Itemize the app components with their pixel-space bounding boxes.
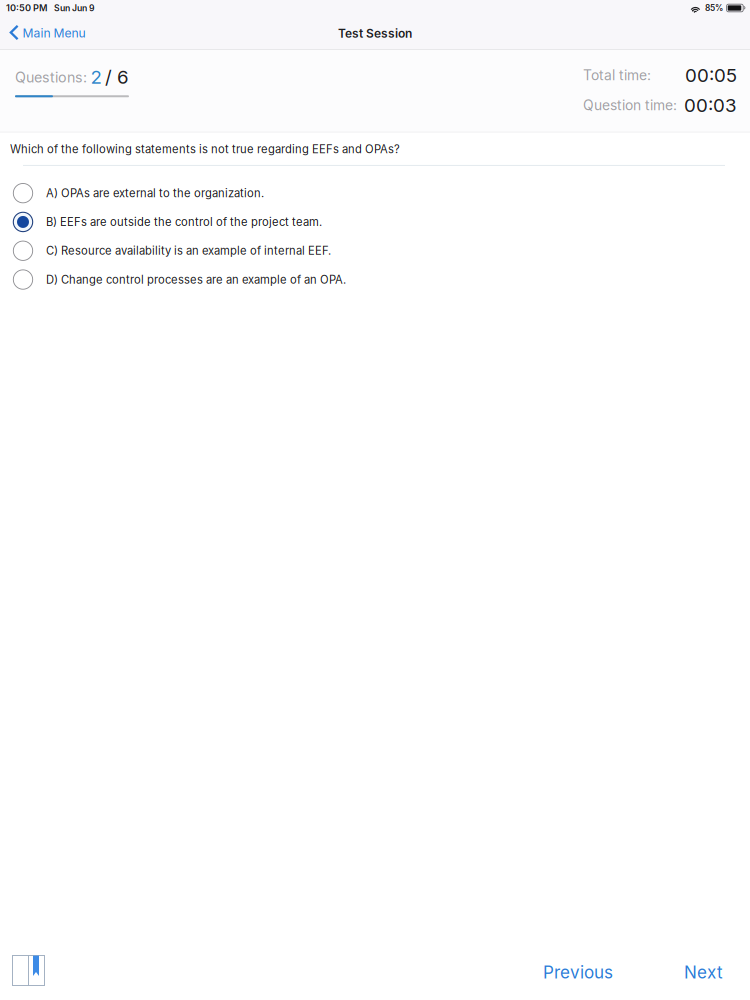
staticText: Main Menu	[22, 26, 85, 41]
button[interactable]: Previous	[531, 955, 625, 999]
staticText: A) OPAs are external to the organization…	[46, 186, 264, 200]
staticText: Test Session	[338, 26, 412, 41]
button[interactable]: C) Resource availability is an example o…	[0, 236, 750, 265]
staticText: 00:03	[684, 94, 737, 116]
staticText: Total time:	[583, 67, 651, 84]
button[interactable]: Main Menu	[0, 18, 95, 47]
button[interactable]: Next	[672, 955, 750, 999]
staticText: 85%	[705, 3, 723, 13]
button[interactable]: Bookmarks	[0, 955, 57, 1000]
button[interactable]: A) OPAs are external to the organization…	[0, 179, 750, 208]
staticText: Sun Jun 9	[54, 3, 95, 13]
staticText: Previous	[543, 962, 613, 983]
staticText: D) Change control processes are an examp…	[46, 273, 346, 286]
button[interactable]: D) Change control processes are an examp…	[0, 265, 750, 294]
button[interactable]: B) EEFs are outside the control of the p…	[0, 208, 750, 236]
staticText: Questions:	[15, 69, 87, 86]
staticText: / 6	[105, 66, 129, 88]
staticText: 10:50 PM	[6, 2, 47, 13]
staticText: B) EEFs are outside the control of the p…	[46, 215, 322, 229]
staticText: Which of the following statements is not…	[10, 142, 400, 156]
staticText: Next	[684, 962, 723, 983]
staticText: 00:05	[685, 64, 737, 86]
staticText: Question time:	[583, 97, 677, 114]
staticText: 2	[90, 66, 101, 88]
staticText: C) Resource availability is an example o…	[46, 244, 331, 258]
